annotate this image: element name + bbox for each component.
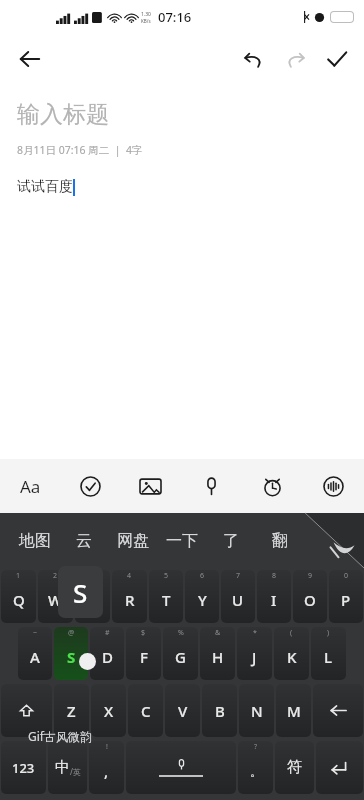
- button[interactable]: 9: [293, 570, 327, 623]
- staticText: K: [287, 647, 297, 667]
- button[interactable]: Checklist: [60, 459, 120, 513]
- button[interactable]: N: [239, 684, 274, 737]
- button[interactable]: enter: [316, 741, 363, 794]
- staticText: L: [324, 647, 333, 667]
- staticText: M: [287, 701, 301, 721]
- staticText: 翻: [272, 531, 288, 551]
- button[interactable]: (: [274, 627, 309, 680]
- staticText: 5: [164, 571, 169, 581]
- staticText: 云: [76, 531, 92, 551]
- staticText: 。: [250, 764, 262, 779]
- staticText: V: [178, 701, 188, 721]
- button[interactable]: 123: [1, 741, 46, 794]
- button[interactable]: 了: [206, 513, 255, 568]
- button[interactable]: #: [90, 627, 124, 680]
- staticText: X: [104, 701, 114, 721]
- staticText: 1.30: [141, 11, 151, 18]
- staticText: 2: [53, 571, 58, 581]
- button[interactable]: C: [128, 684, 163, 737]
- staticText: (: [290, 628, 293, 638]
- button[interactable]: B: [202, 684, 237, 737]
- button[interactable]: 符: [275, 741, 314, 794]
- staticText: U: [232, 590, 244, 610]
- button[interactable]: 4: [112, 570, 147, 623]
- staticText: S: [67, 647, 76, 667]
- staticText: B: [215, 701, 225, 721]
- button[interactable]: 网盘: [108, 513, 157, 568]
- staticText: 网盘: [117, 531, 149, 551]
- staticText: G: [175, 647, 186, 667]
- button[interactable]: 一下: [157, 513, 206, 568]
- button[interactable]: 5: [149, 570, 183, 623]
- staticText: 07:16: [158, 8, 192, 26]
- button[interactable]: 云: [59, 513, 108, 568]
- staticText: 输入标题: [17, 100, 109, 129]
- button[interactable]: &: [200, 627, 235, 680]
- staticText: A: [30, 647, 40, 667]
- staticText: T: [162, 590, 171, 610]
- button[interactable]: 翻: [255, 513, 304, 568]
- button[interactable]: *: [237, 627, 272, 680]
- staticText: W: [48, 590, 63, 610]
- button[interactable]: Undo: [232, 38, 274, 80]
- button[interactable]: !: [89, 741, 124, 794]
- button[interactable]: 地图: [10, 513, 59, 568]
- button[interactable]: 0: [329, 570, 363, 623]
- staticText: /英: [70, 766, 81, 777]
- button[interactable]: back: [313, 684, 363, 737]
- button[interactable]: Redo: [274, 38, 316, 80]
- staticText: P: [341, 590, 351, 610]
- staticText: 符: [287, 758, 302, 777]
- button[interactable]: 6: [185, 570, 219, 623]
- staticText: 地图: [19, 531, 51, 551]
- staticText: R: [125, 590, 135, 610]
- button[interactable]: @: [54, 627, 88, 680]
- button[interactable]: Format text: [0, 459, 60, 513]
- staticText: Z: [67, 701, 76, 721]
- button[interactable]: 2: [38, 570, 73, 623]
- staticText: 中: [55, 758, 70, 777]
- button[interactable]: 8: [257, 570, 291, 623]
- button[interactable]: space: [126, 741, 236, 794]
- button[interactable]: 7: [221, 570, 255, 623]
- button[interactable]: ~: [18, 627, 52, 680]
- staticText: 一下: [166, 531, 198, 551]
- staticText: !: [106, 742, 108, 752]
- button[interactable]: ?: [238, 741, 273, 794]
- button[interactable]: Back: [8, 37, 52, 81]
- staticText: 8月11日 07:16 周二 | 4字: [17, 143, 143, 157]
- staticText: 8: [272, 571, 277, 581]
- button[interactable]: %: [163, 627, 198, 680]
- staticText: Q: [13, 590, 25, 610]
- staticText: D: [102, 647, 113, 667]
- button[interactable]: M: [276, 684, 311, 737]
- staticText: 123: [12, 759, 35, 777]
- staticText: S: [73, 575, 88, 610]
- staticText: &: [215, 628, 221, 638]
- staticText: ): [327, 628, 330, 638]
- button[interactable]: ): [311, 627, 346, 680]
- staticText: $: [141, 628, 146, 638]
- staticText: J: [252, 647, 257, 667]
- button[interactable]: 中: [48, 741, 87, 794]
- button[interactable]: shift: [1, 684, 52, 737]
- button[interactable]: $: [126, 627, 161, 680]
- button[interactable]: V: [165, 684, 200, 737]
- button[interactable]: Z: [54, 684, 89, 737]
- button[interactable]: 3: [75, 570, 110, 623]
- button[interactable]: Insert image: [120, 459, 181, 513]
- button[interactable]: Save: [316, 38, 358, 80]
- staticText: F: [140, 647, 148, 667]
- button[interactable]: Reminder: [242, 459, 303, 513]
- staticText: O: [304, 590, 316, 610]
- button[interactable]: Voice note: [303, 459, 364, 513]
- staticText: 了: [223, 531, 239, 551]
- staticText: KB/s: [141, 18, 151, 24]
- staticText: 7: [236, 571, 241, 581]
- button[interactable]: 1: [1, 570, 36, 623]
- button[interactable]: X: [91, 684, 126, 737]
- button[interactable]: Voice input: [181, 459, 242, 513]
- staticText: 9: [308, 571, 313, 581]
